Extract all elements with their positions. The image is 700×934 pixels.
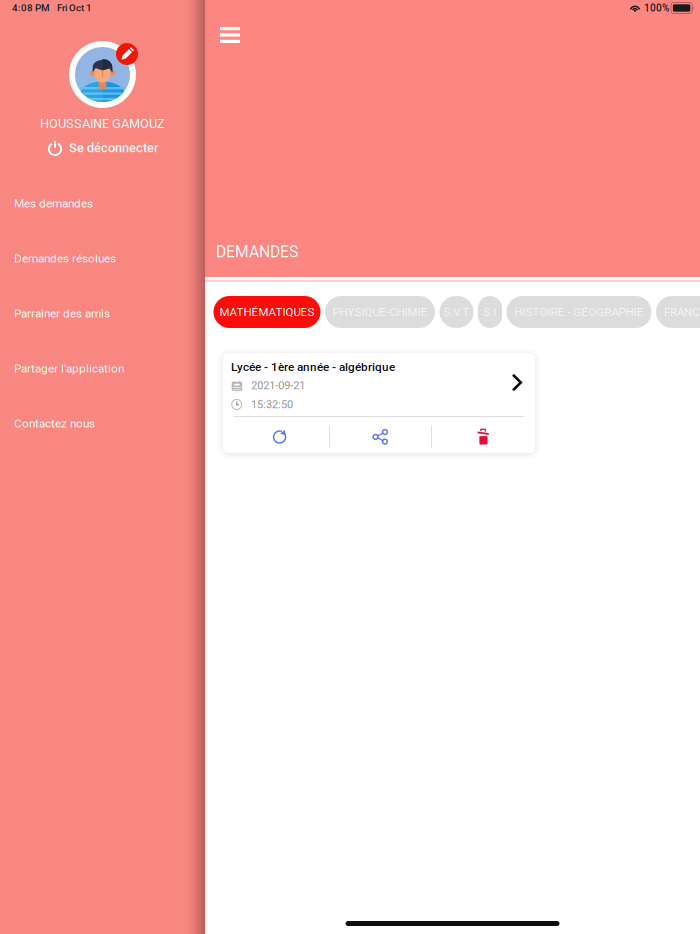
staticText: 2021-09-21 [251,379,305,392]
staticText: 15:32:50 [251,398,293,411]
button[interactable]: Refresh [223,421,329,452]
button[interactable]: FRANÇAIS [656,296,700,328]
staticText: DEMANDES [216,243,298,261]
staticText: S.V.T [443,305,469,319]
staticText: Contactez nous [14,417,95,430]
staticText: 100% [644,2,669,14]
button[interactable]: S.I [478,296,502,328]
staticText: FRANÇAIS [664,305,700,319]
button[interactable]: PHYSIQUE-CHIMIE [325,296,435,328]
button[interactable]: Parrainer des amis [0,286,205,341]
button[interactable]: Partager l'application [0,341,205,396]
staticText: PHYSIQUE-CHIMIE [332,305,427,319]
staticText: Se déconnecter [69,141,158,155]
button[interactable]: HISTOIRE - GÉOGRAPHIE [506,296,651,328]
button[interactable]: Se déconnecter [47,137,158,159]
button[interactable]: Contactez nous [0,396,205,451]
button[interactable]: Menu [214,20,246,50]
staticText: Parrainer des amis [14,307,110,320]
button[interactable]: Delete [432,421,535,452]
staticText: Lycée - 1ère année - algébrique [231,360,395,374]
staticText: Partager l'application [14,362,124,375]
staticText: Demandes résolues [14,252,116,265]
staticText: HISTOIRE - GÉOGRAPHIE [514,305,643,319]
button[interactable]: Share [330,421,431,452]
button[interactable]: Mes demandes [0,176,205,231]
button[interactable]: Demandes résolues [0,231,205,286]
staticText: 4:08 PM [12,2,50,14]
staticText: MATHÉMATIQUES [219,305,314,319]
button[interactable]: MATHÉMATIQUES [213,296,320,328]
staticText: HOUSSAINE GAMOUZ [40,116,165,131]
button[interactable]: S.V.T [439,296,473,328]
staticText: Fri Oct 1 [57,2,92,14]
staticText: Mes demandes [14,197,93,210]
staticText: S.I [483,305,496,319]
